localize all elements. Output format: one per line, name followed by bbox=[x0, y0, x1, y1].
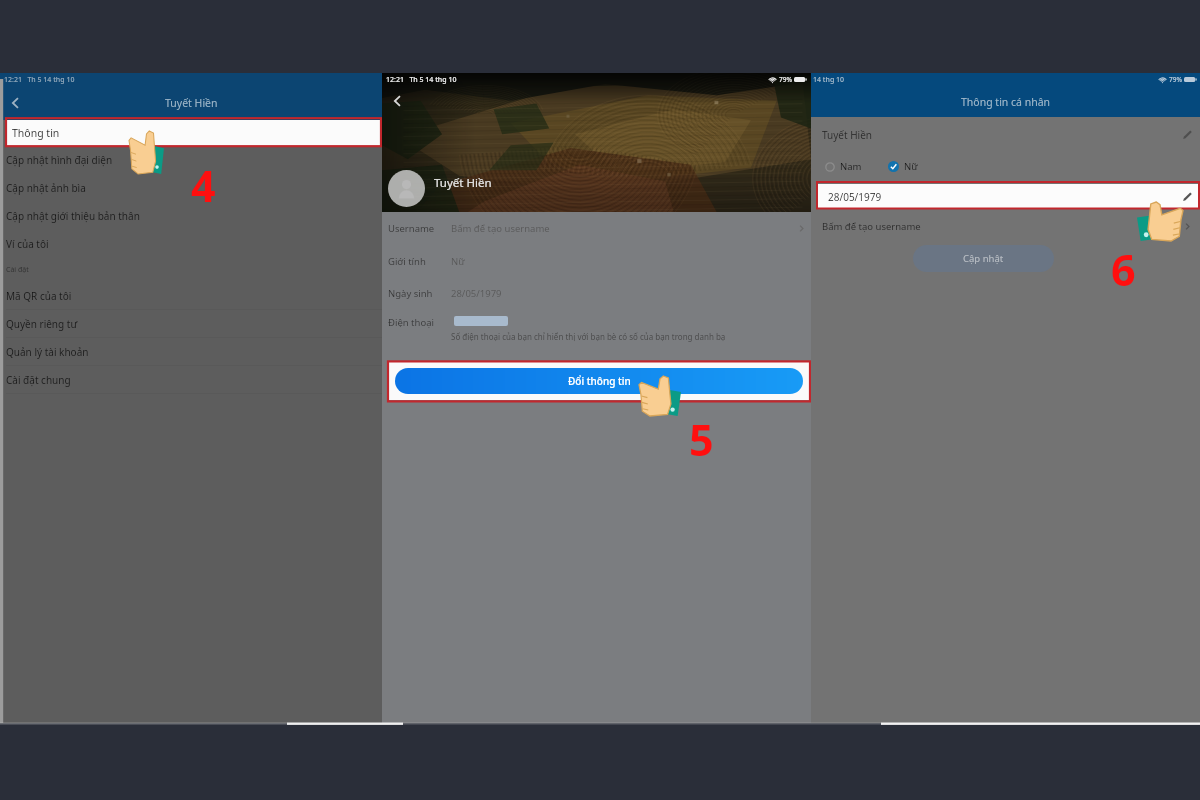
button[interactable]: Cài đặt chung bbox=[0, 366, 382, 394]
other: Edit name bbox=[1183, 130, 1192, 139]
button[interactable]: Ví của tôi bbox=[0, 230, 382, 258]
staticText: Tuyết Hiền bbox=[165, 96, 218, 110]
staticText: Cập nhật ảnh bìa bbox=[6, 181, 86, 195]
staticText: 12:21 Th 5 14 thg 10 bbox=[4, 75, 75, 85]
staticText: 12:21 Th 5 14 thg 10 bbox=[386, 75, 457, 85]
button[interactable]: Thông tin bbox=[6, 120, 382, 146]
staticText: Nữ bbox=[451, 255, 465, 268]
staticText: Cài đặt bbox=[6, 265, 29, 275]
staticText: Cập nhật hình đại diện bbox=[6, 153, 113, 167]
staticText: Tuyết Hiền bbox=[434, 175, 492, 191]
staticText: Thông tin bbox=[12, 126, 60, 140]
staticText: Số điện thoại của bạn chỉ hiển thị với b… bbox=[451, 331, 726, 342]
staticText: Ví của tôi bbox=[6, 237, 49, 251]
button[interactable]: Ngày sinh bbox=[382, 277, 811, 310]
button[interactable]: Bấm để tạo username bbox=[811, 209, 1200, 244]
staticText: Nữ bbox=[904, 160, 918, 173]
staticText: 28/05/1979 bbox=[828, 190, 882, 204]
staticText: Cập nhật bbox=[963, 252, 1004, 265]
button[interactable]: Mã QR của tôi bbox=[0, 282, 382, 310]
button[interactable]: Cập nhật hình đại diện bbox=[0, 146, 382, 174]
button[interactable]: Đổi thông tin bbox=[395, 368, 803, 394]
other: Edit birthday bbox=[1183, 192, 1192, 201]
button[interactable]: Back bbox=[382, 86, 412, 116]
button[interactable]: Tuyết Hiền bbox=[811, 117, 1200, 152]
staticText: Điện thoại bbox=[388, 316, 434, 329]
button[interactable]: Nam bbox=[825, 160, 862, 173]
button[interactable]: Giới tính bbox=[382, 245, 811, 277]
staticText: Bấm để tạo username bbox=[822, 220, 921, 233]
staticText: 79% bbox=[1169, 75, 1182, 84]
staticText: Ngày sinh bbox=[388, 287, 433, 300]
staticText: 14 thg 10 bbox=[813, 75, 845, 85]
staticText: Bấm để tạo username bbox=[451, 222, 550, 235]
button[interactable]: Cập nhật ảnh bìa bbox=[0, 174, 382, 202]
button[interactable]: 28/05/1979 bbox=[817, 184, 1200, 209]
button[interactable]: Back bbox=[0, 88, 30, 118]
button[interactable]: Nữ bbox=[888, 160, 918, 173]
button[interactable]: Username bbox=[382, 212, 811, 245]
staticText: Cài đặt chung bbox=[6, 373, 71, 387]
staticText: Username bbox=[388, 222, 435, 235]
staticText: 79% bbox=[779, 75, 792, 84]
staticText: Tuyết Hiền bbox=[822, 128, 872, 142]
staticText: Nam bbox=[840, 160, 862, 173]
staticText: 28/05/1979 bbox=[451, 287, 502, 300]
staticText: Thông tin cá nhân bbox=[961, 95, 1051, 109]
staticText: Giới tính bbox=[388, 255, 426, 268]
button[interactable]: Quản lý tài khoản bbox=[0, 338, 382, 366]
staticText: Quản lý tài khoản bbox=[6, 345, 89, 359]
staticText: 6 bbox=[1111, 240, 1136, 299]
button[interactable]: Quyền riêng tư bbox=[0, 310, 382, 338]
staticText: 4 bbox=[191, 156, 216, 215]
button[interactable]: Cập nhật bbox=[913, 245, 1054, 272]
staticText: Mã QR của tôi bbox=[6, 289, 72, 303]
staticText: Quyền riêng tư bbox=[6, 317, 78, 331]
staticText: 5 bbox=[689, 410, 714, 469]
staticText: Đổi thông tin bbox=[568, 374, 631, 388]
button[interactable]: Cập nhật giới thiệu bản thân bbox=[0, 202, 382, 230]
staticText: Cập nhật giới thiệu bản thân bbox=[6, 209, 140, 223]
